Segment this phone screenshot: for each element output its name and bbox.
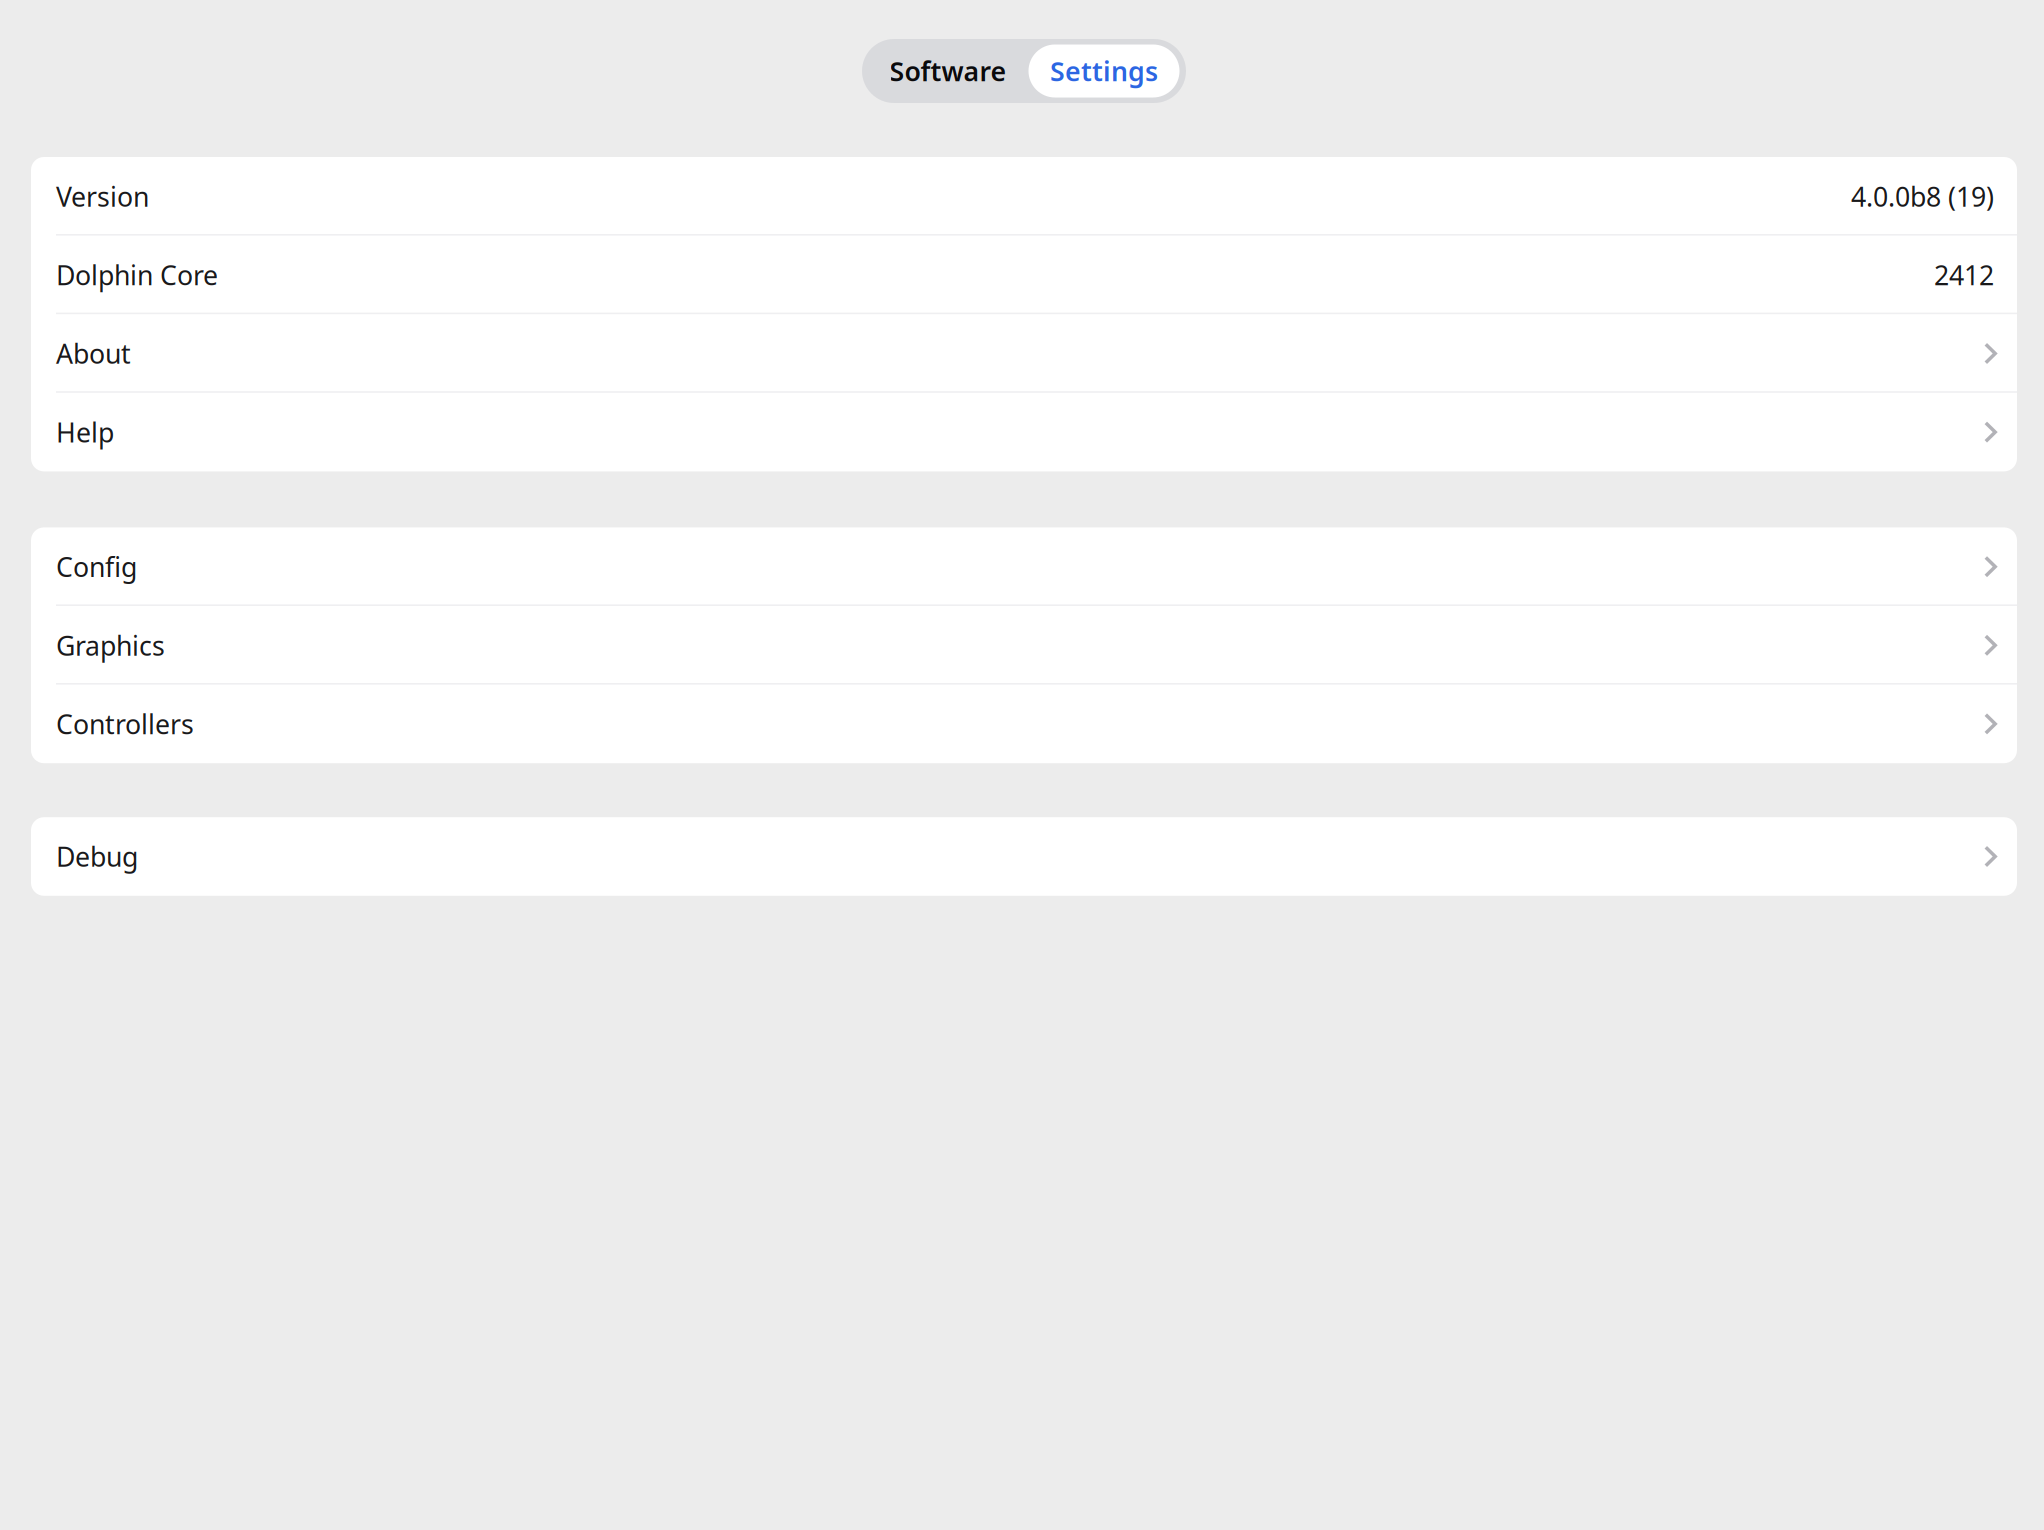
staticText: Dolphin Core [56, 257, 218, 293]
staticText: Software [889, 53, 1006, 89]
button[interactable]: Graphics [31, 606, 2017, 685]
button[interactable]: About [31, 314, 2017, 393]
button[interactable]: Debug [31, 817, 2017, 896]
staticText: About [56, 336, 131, 371]
staticText: Debug [56, 839, 138, 874]
button[interactable]: Controllers [31, 685, 2017, 763]
staticText: 4.0.0b8 (19) [1851, 179, 1994, 214]
button[interactable]: Config [31, 527, 2017, 606]
button[interactable]: Settings [1028, 44, 1179, 97]
staticText: Graphics [56, 628, 165, 663]
staticText: Help [56, 414, 114, 450]
staticText: Config [56, 549, 137, 584]
staticText: Version [56, 179, 149, 214]
button[interactable]: Help [31, 393, 2017, 471]
staticText: Controllers [56, 706, 194, 742]
staticText: 2412 [1934, 257, 1994, 293]
button[interactable]: Software [867, 44, 1028, 97]
staticText: Settings [1050, 53, 1158, 89]
